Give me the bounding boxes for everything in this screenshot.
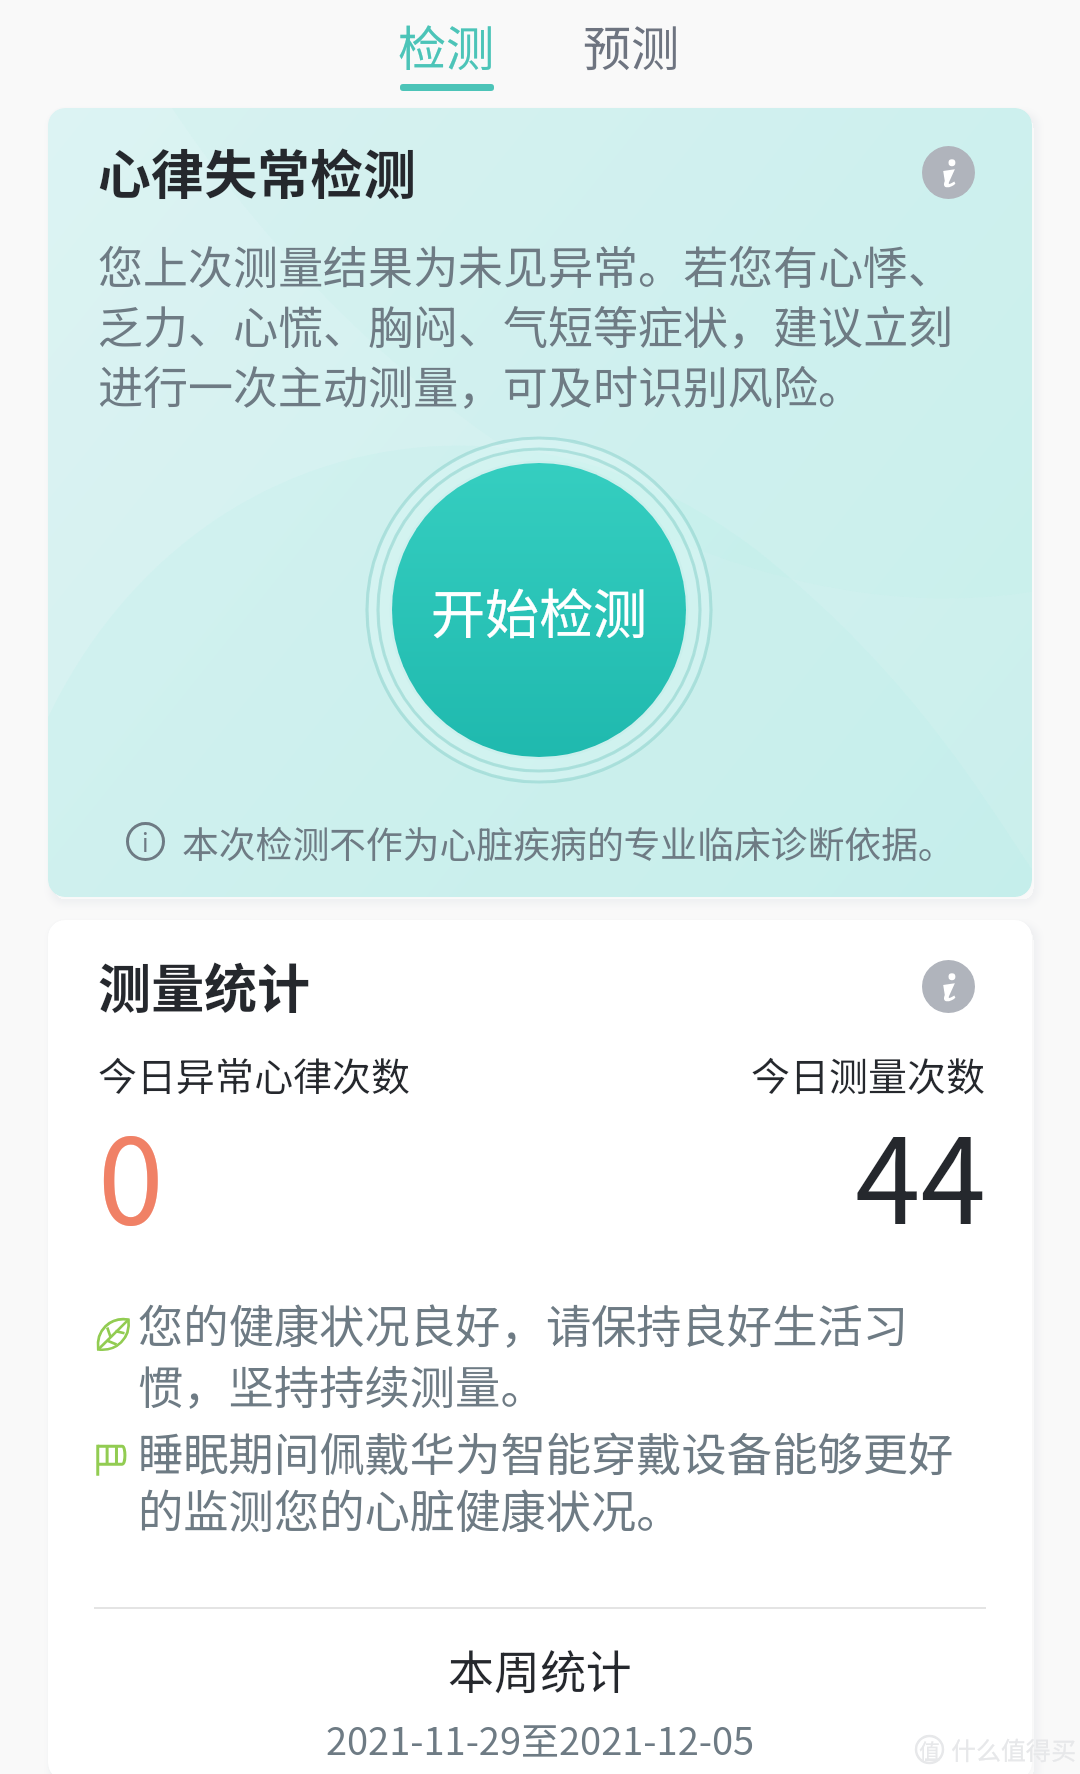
staticText: 2021-11-29至2021-12-05 <box>48 1711 1032 1766</box>
staticText: 今日异常心律次数 <box>98 1046 411 1102</box>
staticText: 预测 <box>583 10 680 80</box>
staticText: 今日测量次数 <box>751 1046 986 1102</box>
staticText: 测量统计 <box>98 947 310 1024</box>
staticText: 值 <box>919 1735 940 1764</box>
staticText: 本周统计 <box>48 1636 1032 1703</box>
staticText: 44 <box>855 1087 986 1258</box>
button[interactable]: 检测 <box>356 0 536 99</box>
button[interactable]: Information <box>922 146 975 199</box>
button[interactable]: 开始检测 <box>392 463 686 757</box>
staticText: 睡眠期间佩戴华为智能穿戴设备能够更好的监测您的心脏健康状况。 <box>138 1418 978 1541</box>
staticText: 检测 <box>398 10 495 80</box>
button[interactable]: Information <box>922 960 975 1013</box>
staticText: i <box>142 824 149 859</box>
staticText: 0 <box>98 1087 164 1258</box>
button[interactable]: 预测 <box>541 0 721 99</box>
staticText: 开始检测 <box>431 571 647 649</box>
staticText: 心律失常检测 <box>98 133 416 210</box>
staticText: 本次检测不作为心脏疾病的专业临床诊断依据。 <box>182 815 955 868</box>
staticText: 您的健康状况良好，请保持良好生活习惯，坚持持续测量。 <box>138 1290 928 1417</box>
staticText: 您上次测量结果为未见异常。若您有心悸、乏力、心慌、胸闷、气短等症状，建议立刻进行… <box>98 232 982 417</box>
staticText: 什么值得买 <box>951 1731 1077 1767</box>
